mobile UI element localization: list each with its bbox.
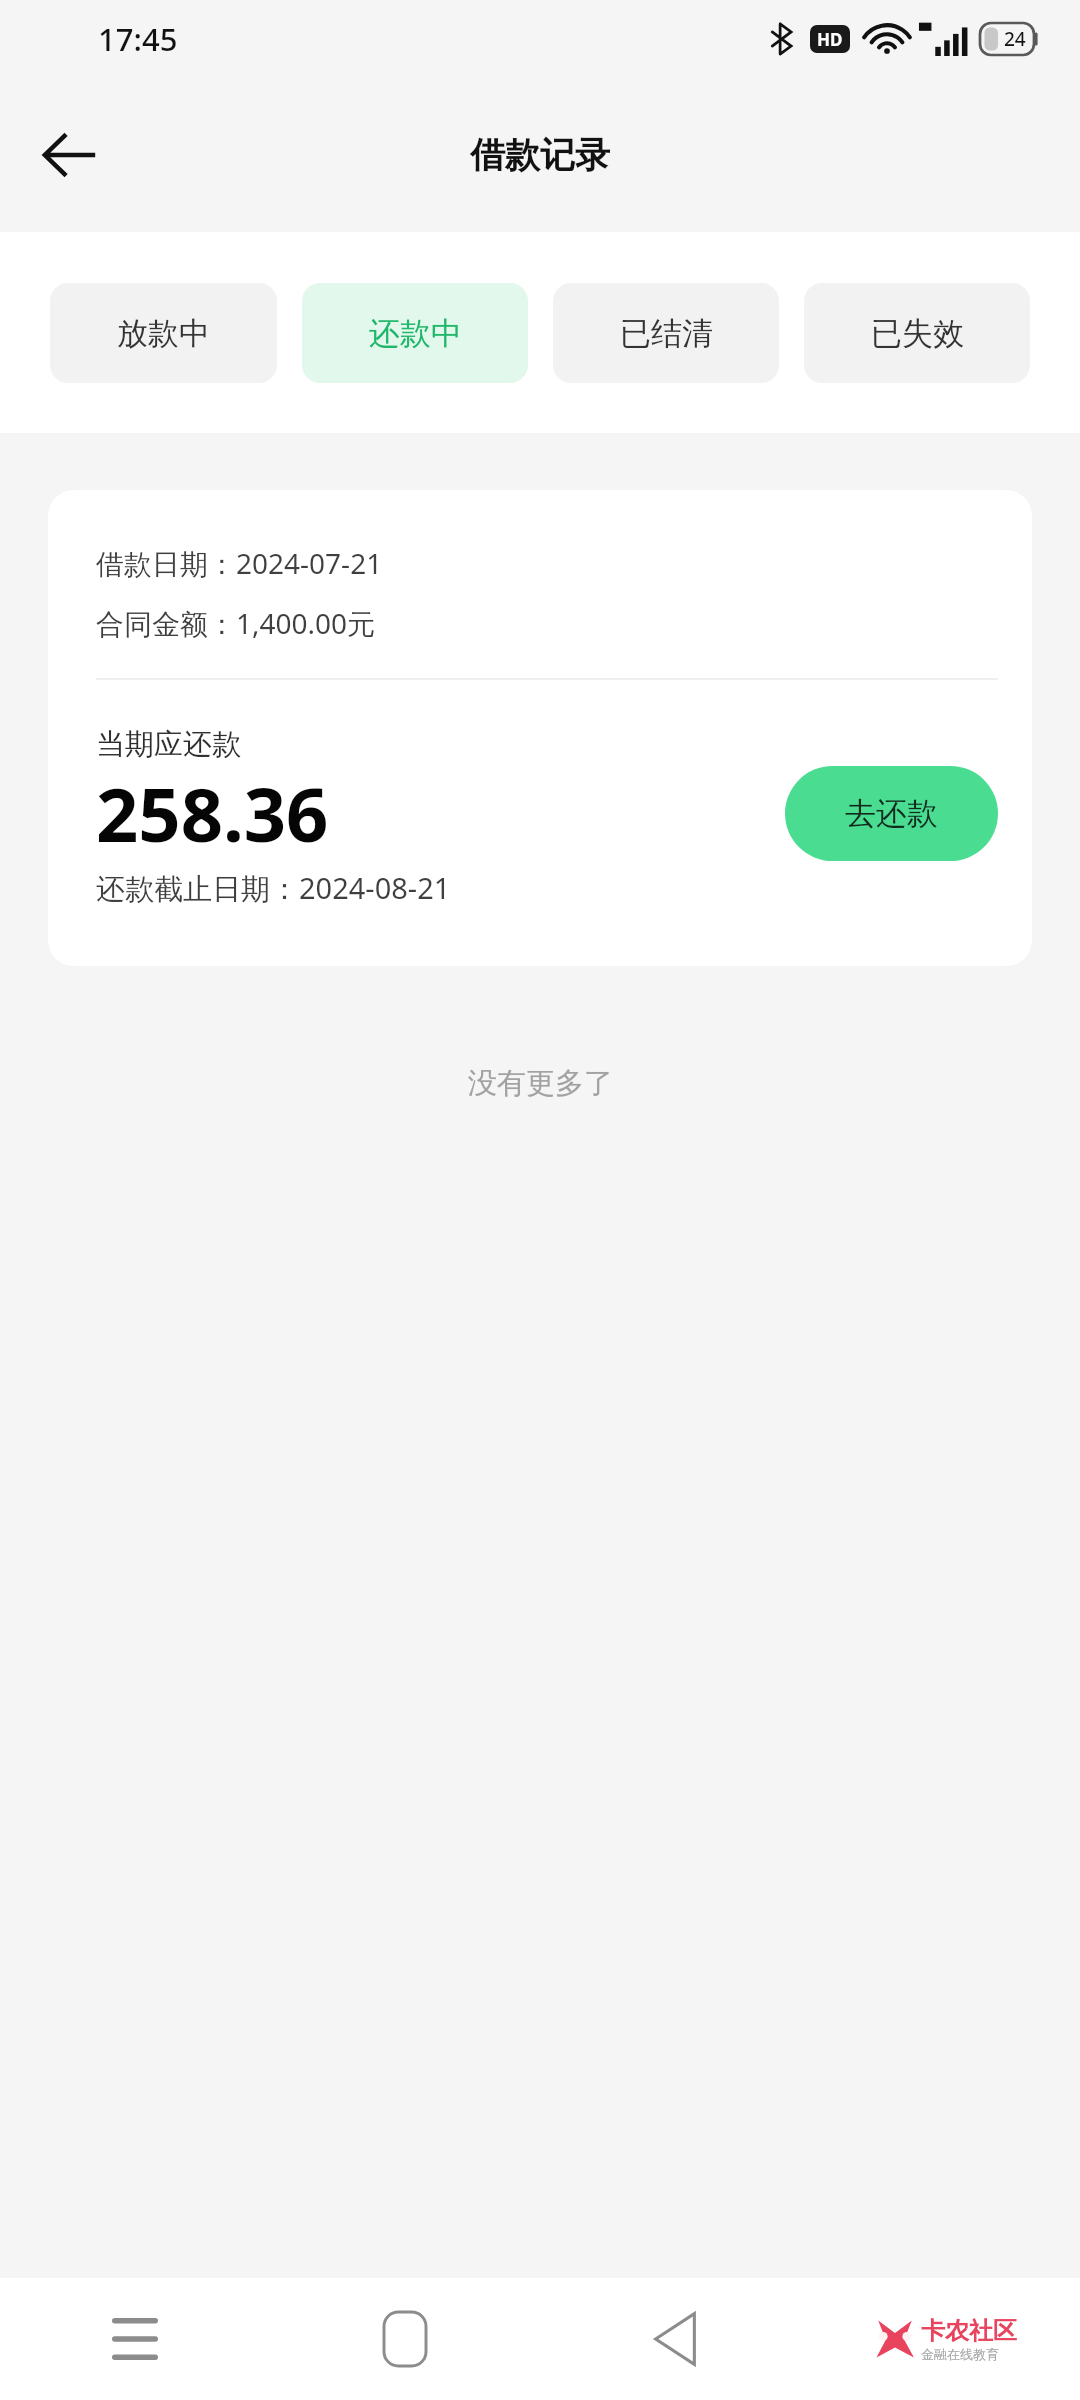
staticText: 17:45 <box>98 18 178 60</box>
staticText: 已失效 <box>871 314 964 353</box>
button[interactable]: 已结清 <box>553 283 779 383</box>
staticText: 已结清 <box>620 314 713 353</box>
button[interactable]: 借款日期：2024-07-21 <box>48 490 1032 966</box>
staticText: 合同金额：1,400.00元 <box>96 604 376 642</box>
button[interactable]: Back <box>540 2278 810 2400</box>
button[interactable]: Back <box>20 105 120 205</box>
staticText: 当期应还款 <box>96 726 241 763</box>
staticText: 放款中 <box>117 314 210 353</box>
staticText: 24 <box>1004 26 1026 52</box>
staticText: 借款日期：2024-07-21 <box>96 544 383 582</box>
button[interactable]: Recent apps <box>0 2278 270 2400</box>
staticText: 没有更多了 <box>468 1065 613 1102</box>
button[interactable]: 去还款 <box>785 766 998 861</box>
staticText: 卡农社区 <box>921 2316 1017 2346</box>
staticText: 还款截止日期：2024-08-21 <box>96 868 451 908</box>
staticText: HD <box>817 28 843 51</box>
button[interactable]: Home <box>270 2278 540 2400</box>
staticText: 去还款 <box>845 794 938 833</box>
staticText: 金融在线教育 <box>921 2346 999 2362</box>
staticText: 借款记录 <box>470 133 610 177</box>
button[interactable]: 已失效 <box>804 283 1030 383</box>
staticText: 258.36 <box>96 763 329 864</box>
button[interactable]: 还款中 <box>302 283 528 383</box>
button[interactable]: 放款中 <box>50 283 277 383</box>
staticText: 还款中 <box>369 314 462 353</box>
